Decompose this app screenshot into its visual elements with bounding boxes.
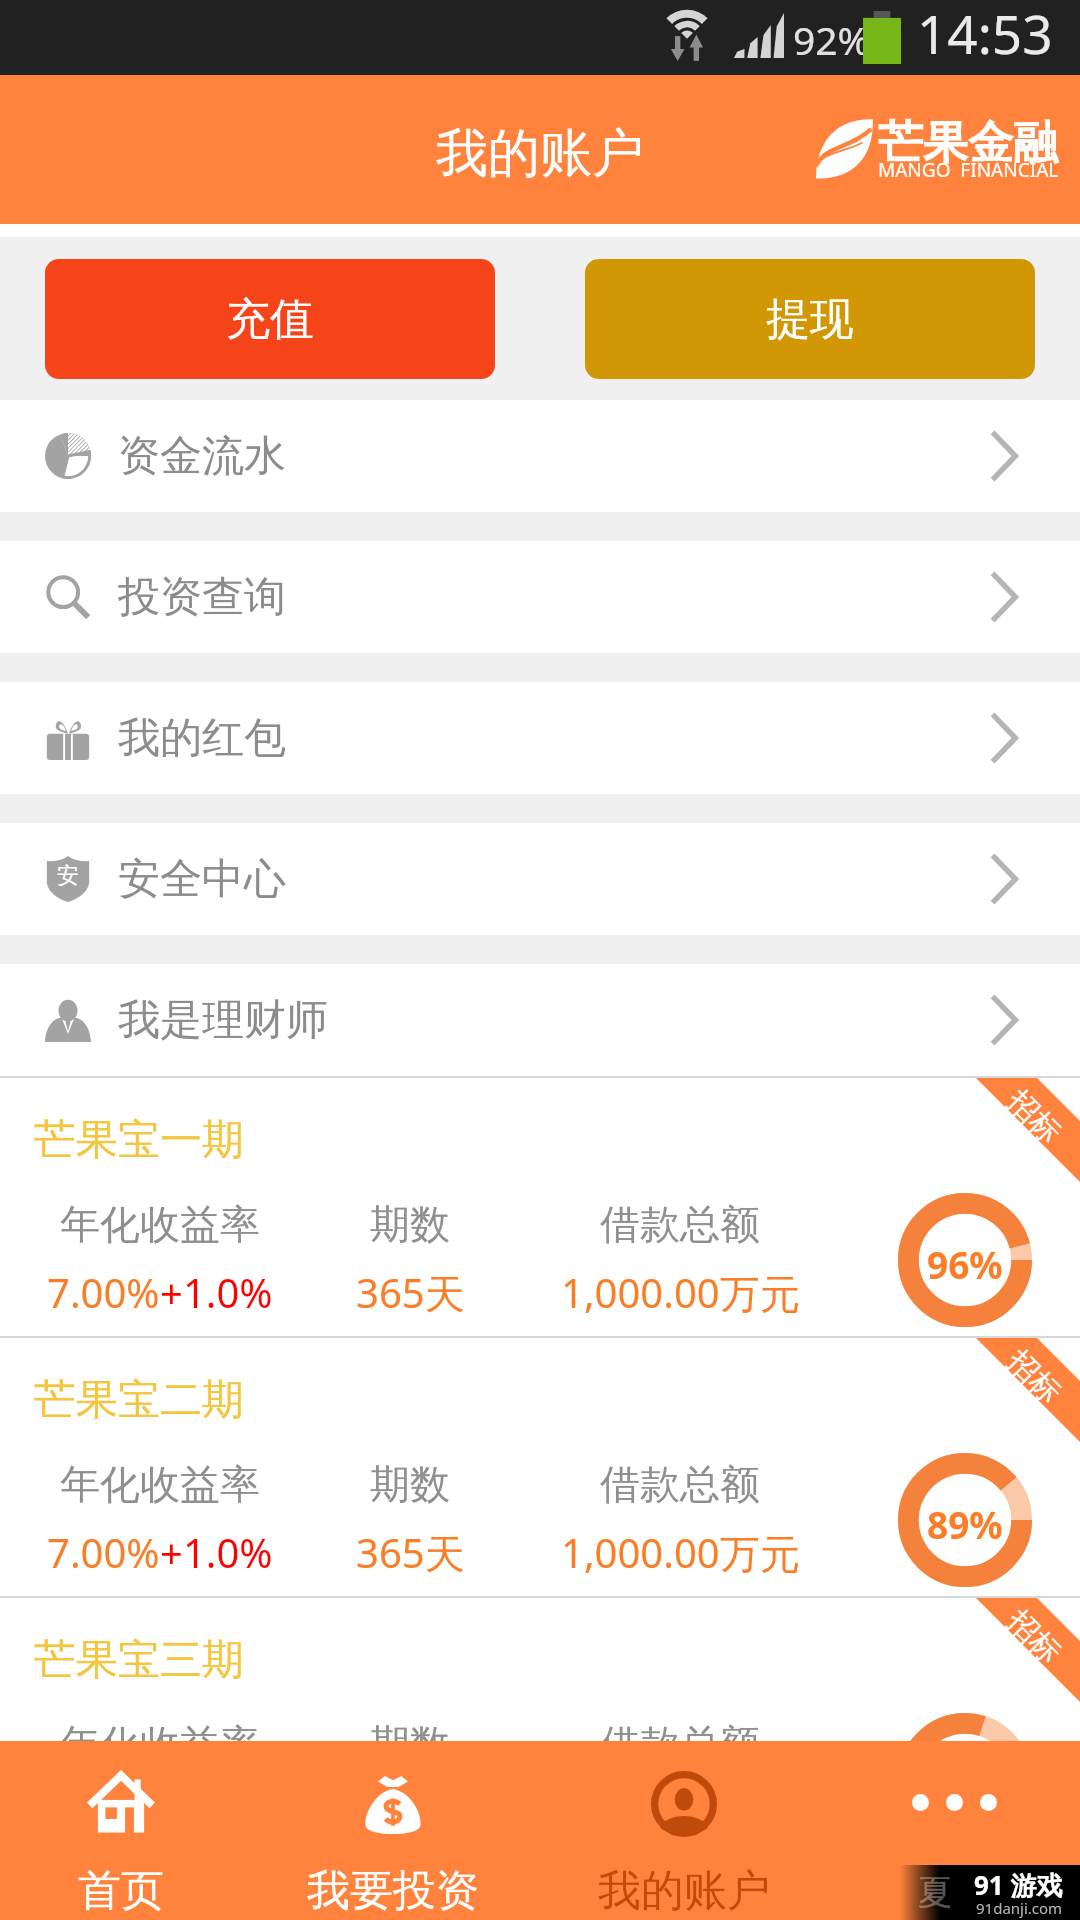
staticText: 92% (793, 13, 871, 66)
staticText: 安 (57, 862, 79, 890)
button[interactable]: 资金流水 (0, 400, 1080, 512)
staticText: 充值 (226, 292, 314, 347)
staticText: 投资查询 (118, 571, 286, 624)
button[interactable]: More (823, 1741, 1080, 1920)
staticText: 1,000.00万元 (561, 1525, 800, 1580)
button[interactable]: 首页 (0, 1741, 241, 1920)
button[interactable]: 提现 (585, 259, 1035, 379)
staticText: 提现 (766, 292, 854, 347)
staticText: 14:53 (917, 0, 1053, 69)
staticText: 91danji.com (976, 1898, 1063, 1918)
staticText: 80% (927, 1759, 1003, 1809)
staticText: 期数 (370, 1719, 450, 1741)
staticText: 年化收益率 (60, 1719, 260, 1741)
staticText: MANGO FINANCIAL (878, 157, 1059, 183)
button[interactable]: 投资查询 (0, 541, 1080, 653)
staticText: 91 游戏 (974, 1867, 1063, 1903)
staticText: 资金流水 (118, 430, 286, 483)
button[interactable]: 充值 (45, 259, 495, 379)
staticText: +1.0% (160, 1525, 273, 1579)
button[interactable]: 芒果宝三期 (0, 1598, 1080, 1741)
staticText: 96% (927, 1239, 1003, 1289)
button[interactable]: 芒果宝二期 (0, 1338, 1080, 1596)
staticText: 芒果金融 (878, 115, 1058, 172)
staticText: 招标 (999, 1342, 1069, 1412)
button[interactable]: 我是理财师 (0, 964, 1080, 1076)
staticText: 我是理财师 (118, 994, 328, 1047)
staticText: +1.0% (160, 1265, 273, 1319)
staticText: 89% (927, 1499, 1003, 1549)
staticText: 我要投资 (307, 1864, 479, 1918)
staticText: 芒果宝一期 (34, 1114, 244, 1167)
button[interactable]: 我的红包 (0, 682, 1080, 794)
staticText: 借款总额 (600, 1719, 760, 1741)
staticText: 7.00% (47, 1265, 160, 1319)
staticText: 我的账户 (436, 121, 644, 187)
staticText: 7.00% (47, 1525, 160, 1579)
staticText: 夏 (918, 1871, 952, 1914)
staticText: 借款总额 (600, 1199, 760, 1249)
button[interactable]: 我要投资 (241, 1741, 544, 1920)
button[interactable]: 芒果宝一期 (0, 1078, 1080, 1336)
staticText: 招标 (999, 1602, 1069, 1672)
staticText: 我的账户 (598, 1864, 770, 1918)
staticText: 我的红包 (118, 712, 286, 765)
button[interactable]: 我的账户 (544, 1741, 823, 1920)
staticText: 安全中心 (118, 853, 286, 906)
staticText: 首页 (78, 1864, 164, 1918)
staticText: 芒果宝三期 (34, 1634, 244, 1687)
staticText: 期数 (370, 1459, 450, 1509)
staticText: 期数 (370, 1199, 450, 1249)
staticText: 年化收益率 (60, 1459, 260, 1509)
staticText: 365天 (356, 1525, 465, 1580)
staticText: 年化收益率 (60, 1199, 260, 1249)
staticText: 招标 (999, 1082, 1069, 1152)
staticText: 1,000.00万元 (561, 1265, 800, 1320)
staticText: 借款总额 (600, 1459, 760, 1509)
staticText: 365天 (356, 1265, 465, 1320)
staticText: 芒果宝二期 (34, 1374, 244, 1427)
button[interactable]: 安 (0, 823, 1080, 935)
